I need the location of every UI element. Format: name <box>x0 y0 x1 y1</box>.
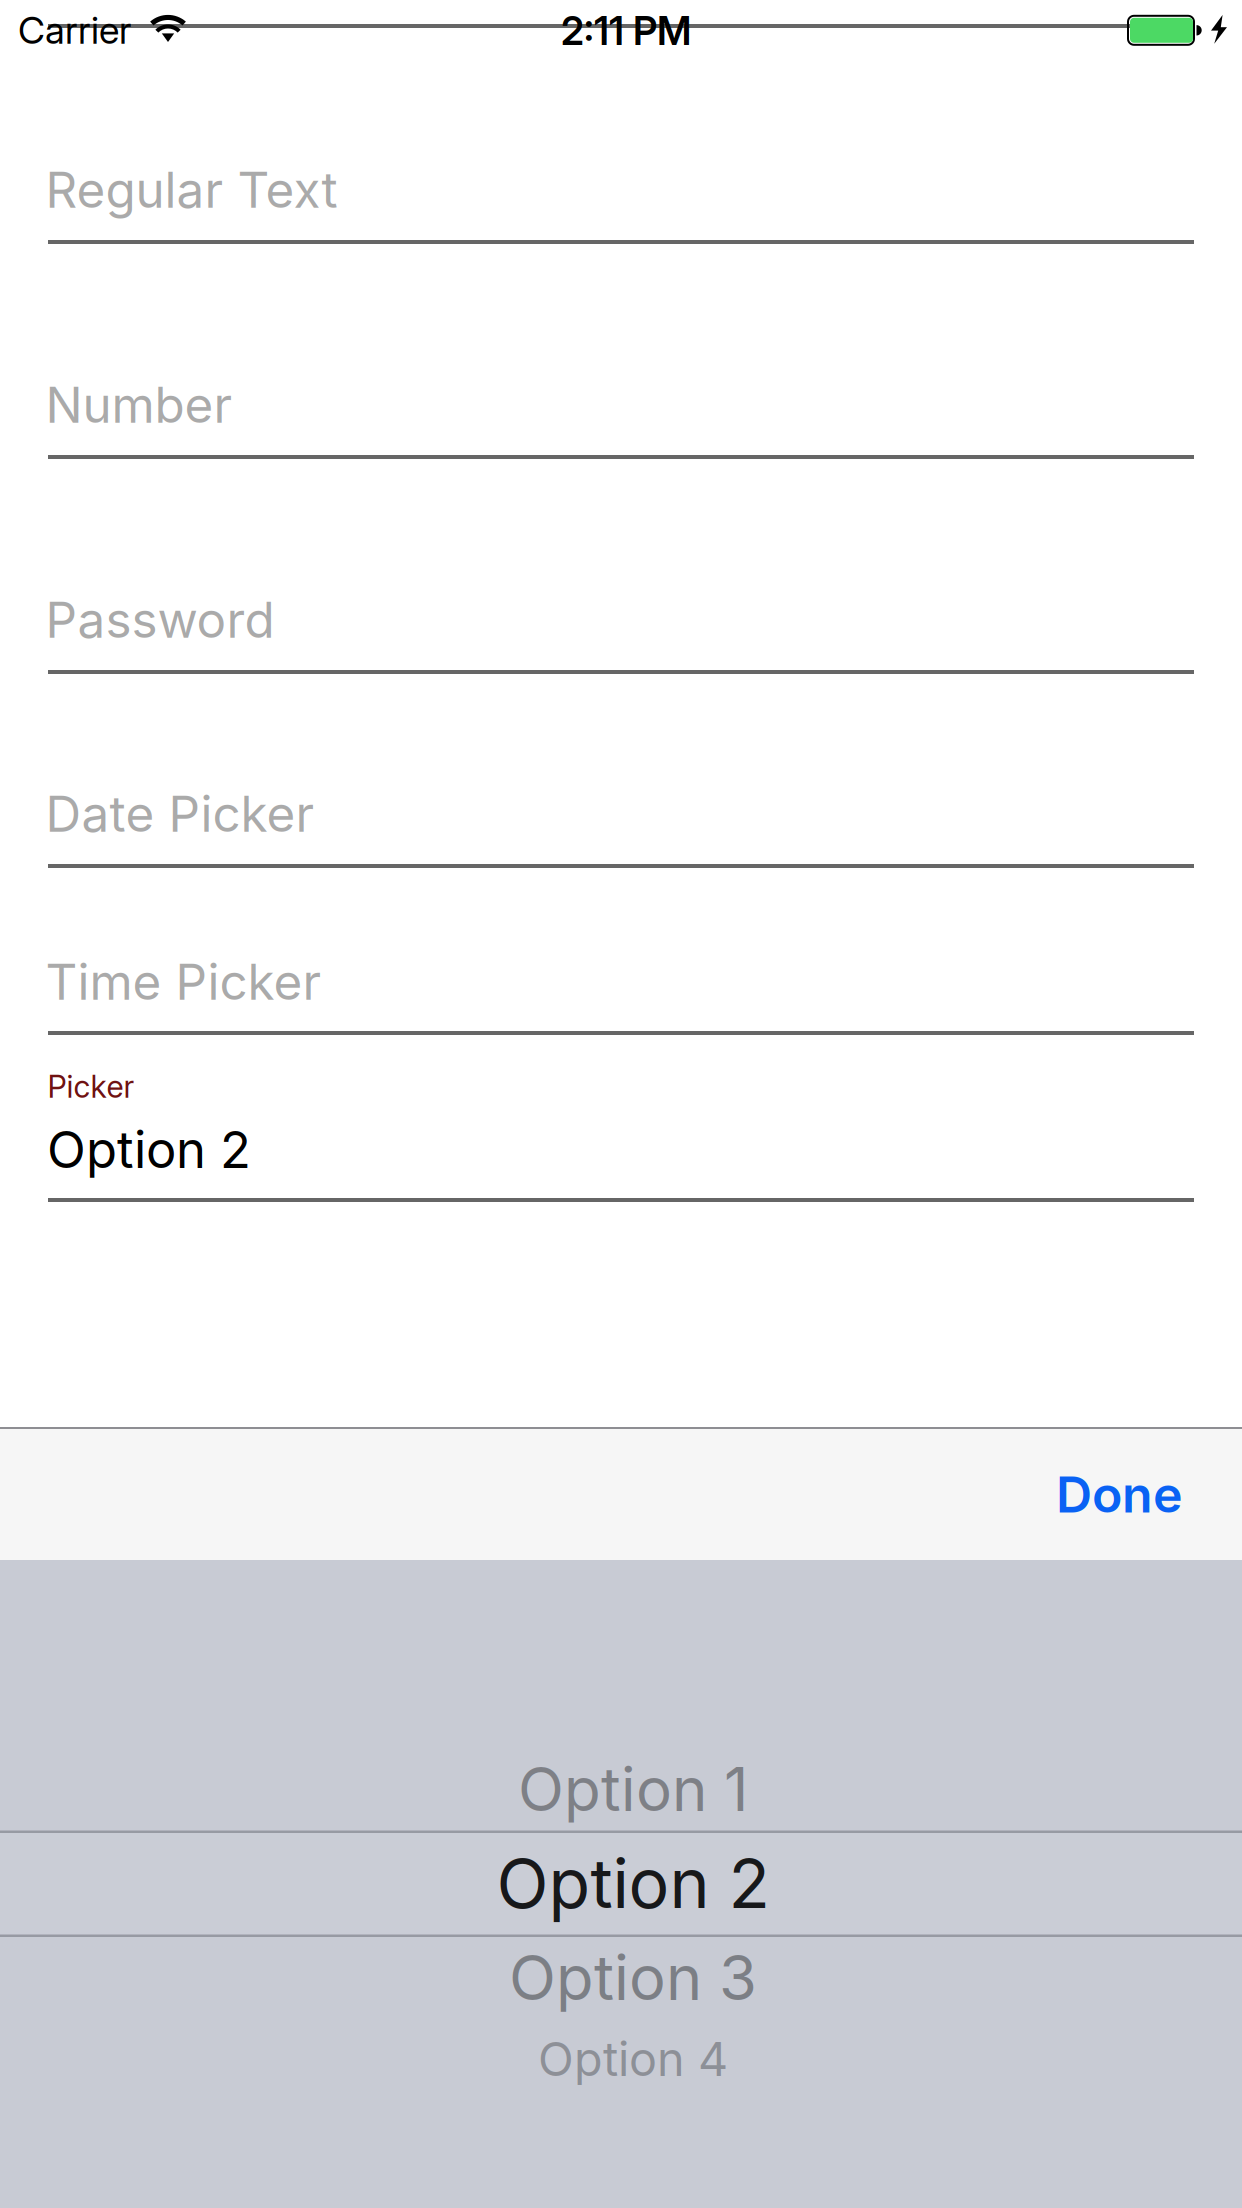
button[interactable]: Done <box>920 1429 1180 1559</box>
staticText: Time Picker <box>45 952 321 1012</box>
staticText: Option 3 <box>509 1941 757 2015</box>
staticText: Carrier <box>18 7 131 53</box>
button[interactable]: Password <box>48 459 1194 674</box>
button[interactable]: Option 3 <box>0 1937 1242 2023</box>
staticText: Option 4 <box>538 2031 728 2087</box>
button[interactable]: Option 2 <box>0 1833 1242 1935</box>
button[interactable]: Option 4 <box>0 2025 1242 2095</box>
staticText: Option 2 <box>47 1119 251 1180</box>
staticText: Password <box>45 590 274 650</box>
staticText: Picker <box>47 1068 134 1105</box>
staticText: 2:11 PM <box>561 7 691 54</box>
staticText: Regular Text <box>45 160 337 220</box>
button[interactable]: Regular Text <box>48 60 1194 244</box>
staticText: Option 2 <box>496 1842 769 1924</box>
staticText: Number <box>45 375 232 435</box>
staticText: Date Picker <box>45 784 314 844</box>
button[interactable]: Picker <box>48 1035 1194 1202</box>
button[interactable]: Time Picker <box>48 868 1194 1035</box>
staticText: Done <box>1056 1464 1183 1524</box>
staticText: Option 1 <box>518 1753 748 1825</box>
button[interactable]: Date Picker <box>48 674 1194 868</box>
button[interactable]: Option 1 <box>0 1745 1242 1831</box>
button[interactable]: Number <box>48 244 1194 459</box>
